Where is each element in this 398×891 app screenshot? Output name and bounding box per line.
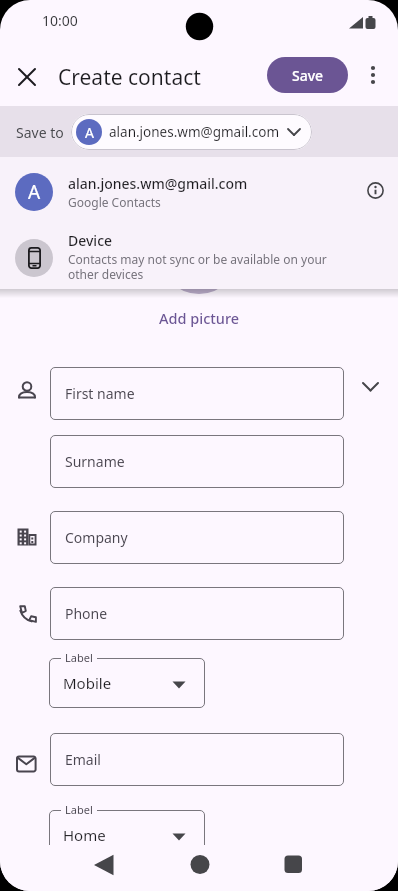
staticText: Email [65, 750, 101, 769]
staticText: Save [292, 66, 324, 85]
staticText: Label [65, 802, 93, 817]
staticText: 10:00 [42, 11, 78, 30]
button[interactable]: A [0, 157, 398, 225]
staticText: Create contact [58, 63, 201, 92]
button[interactable]: Company [50, 511, 344, 564]
staticText: Device [68, 231, 113, 250]
staticText: Mobile [63, 673, 112, 693]
button[interactable] [351, 367, 391, 407]
staticText: Google Contacts [68, 194, 161, 210]
button[interactable] [355, 170, 395, 210]
staticText: Home [63, 825, 106, 845]
button[interactable]: Home [49, 810, 205, 845]
button[interactable]: Surname [50, 435, 344, 488]
button[interactable]: Mobile [49, 658, 205, 708]
staticText: Phone [65, 604, 108, 623]
staticText: Company [65, 528, 128, 547]
staticText: Add picture [159, 308, 240, 328]
button[interactable]: Email [50, 733, 344, 786]
button[interactable] [15, 65, 39, 89]
button[interactable]: First name [50, 367, 344, 420]
staticText: Label [65, 650, 93, 665]
staticText: alan.jones.wm@gmail.com [68, 174, 248, 193]
staticText: First name [65, 384, 135, 403]
staticText: A [85, 123, 94, 142]
staticText: Surname [65, 452, 125, 471]
button[interactable]: Phone [50, 587, 344, 640]
staticText: Save to [16, 123, 64, 142]
button[interactable] [361, 63, 385, 87]
button[interactable]: Add picture [143, 303, 255, 333]
button[interactable]: Save [267, 57, 348, 93]
staticText: A [28, 179, 41, 205]
staticText: Contacts may not sync or be available on… [68, 251, 327, 282]
staticText: alan.jones.wm@gmail.com [109, 123, 280, 141]
button[interactable]: Device [0, 225, 398, 289]
button[interactable]: A [71, 114, 312, 150]
